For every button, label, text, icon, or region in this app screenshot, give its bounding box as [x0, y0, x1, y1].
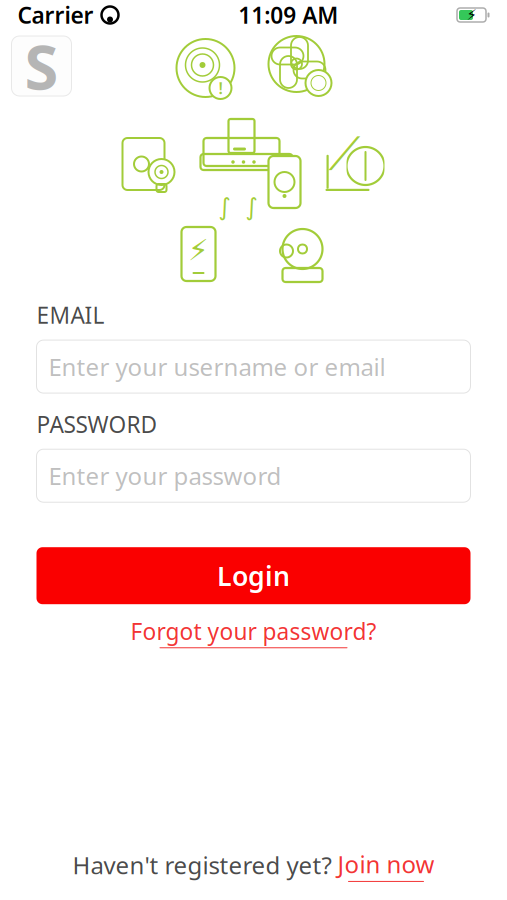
button[interactable]: Enter your password — [36, 449, 470, 502]
button[interactable]: Forgot your password? — [36, 618, 470, 646]
staticText: ⟋ — [328, 134, 360, 178]
button[interactable]: Join now — [337, 848, 434, 882]
button[interactable]: Enter your username or email — [36, 340, 470, 393]
staticText: PASSWORD — [36, 409, 157, 439]
staticText: Forgot your password? — [130, 616, 376, 646]
staticText: ! — [218, 77, 222, 99]
staticText: ∫ — [245, 193, 258, 221]
button[interactable]: Login — [36, 547, 470, 604]
staticText: Enter your username or email — [48, 351, 385, 383]
staticText: Carrier — [17, 0, 93, 30]
staticText: 11:09 AM — [238, 0, 338, 30]
staticText: ⚡︎ — [466, 7, 476, 23]
staticText: ⚡︎ — [188, 233, 209, 267]
staticText: Haven't registered yet? — [72, 849, 331, 881]
staticText: ∫ — [218, 193, 231, 221]
staticText: Enter your password — [48, 460, 281, 492]
staticText: EMAIL — [36, 300, 104, 330]
staticText: S — [24, 25, 58, 107]
staticText: Login — [217, 558, 290, 593]
staticText: Join now — [337, 848, 434, 880]
